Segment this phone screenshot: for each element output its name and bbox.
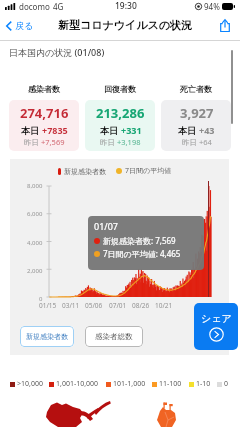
staticText: docomo xyxy=(19,1,50,12)
staticText: 本日 xyxy=(178,124,199,136)
staticText: +7835 xyxy=(42,124,68,136)
staticText: 6,000 xyxy=(27,210,43,218)
staticText: 7日間の平均値: 4,465 xyxy=(103,248,181,259)
staticText: 昨日 xyxy=(100,137,117,147)
button[interactable]: 共有 xyxy=(216,16,234,34)
staticText: +3,198 xyxy=(117,137,141,147)
staticText: 0 xyxy=(39,295,43,303)
staticText: 01/15 xyxy=(39,301,57,310)
staticText: 213,286 xyxy=(96,104,145,122)
staticText: 08/26 xyxy=(132,301,150,310)
staticText: 05/06 xyxy=(85,301,103,310)
staticText: 274,716 xyxy=(20,104,69,122)
button[interactable]: 戻る xyxy=(4,17,36,34)
staticText: >10,000 xyxy=(17,379,43,389)
staticText: 07/01 xyxy=(109,301,127,310)
staticText: シェア xyxy=(201,312,232,325)
staticText: 日本国内の状況 (01/08) xyxy=(9,46,105,58)
staticText: 新型コロナウイルスの状況 xyxy=(58,18,193,32)
button[interactable]: 3,927 xyxy=(161,100,231,151)
staticText: +43 xyxy=(199,124,215,136)
button[interactable]: シェア xyxy=(194,303,238,350)
staticText: 感染者数 xyxy=(28,84,60,94)
staticText: 本日 xyxy=(21,124,42,136)
staticText: 本日 xyxy=(100,124,121,136)
staticText: 1-10 xyxy=(196,379,211,389)
staticText: +7,569 xyxy=(41,137,65,147)
staticText: +331 xyxy=(121,124,142,136)
staticText: 101-1,000 xyxy=(113,379,146,389)
staticText: 4,000 xyxy=(27,239,43,247)
staticText: 94% xyxy=(204,1,220,12)
staticText: 4G xyxy=(53,1,64,12)
staticText: +64 xyxy=(199,137,212,147)
staticText: 03/11 xyxy=(62,301,80,310)
staticText: 0 xyxy=(224,379,229,389)
staticText: 昨日 xyxy=(182,137,199,147)
staticText: 1,001-10,000 xyxy=(56,379,99,389)
staticText: 7日間の平均値 xyxy=(125,166,172,176)
button[interactable]: 213,286 xyxy=(85,100,155,151)
staticText: 8,000 xyxy=(27,182,43,190)
staticText: 感染者総数 xyxy=(95,332,133,341)
staticText: 新規感染者数 xyxy=(26,332,68,341)
staticText: 昨日 xyxy=(24,137,41,147)
staticText: 10/21 xyxy=(155,301,173,310)
staticText: 戻る xyxy=(15,20,34,31)
button[interactable]: 感染者総数 xyxy=(85,326,143,347)
staticText: 3,927 xyxy=(180,104,214,122)
button[interactable]: 新規感染者数 xyxy=(20,326,74,347)
staticText: 01/07 xyxy=(94,220,118,232)
button[interactable]: 274,716 xyxy=(9,100,79,151)
staticText: 19:30 xyxy=(115,0,137,12)
staticText: 新規感染者数: 7,569 xyxy=(103,235,176,246)
staticText: 回復者数 xyxy=(104,84,136,94)
staticText: 11-100 xyxy=(159,379,182,389)
staticText: 死亡者数 xyxy=(180,84,212,94)
staticText: 新規感染者数 xyxy=(64,167,106,176)
staticText: 2,000 xyxy=(27,267,43,275)
